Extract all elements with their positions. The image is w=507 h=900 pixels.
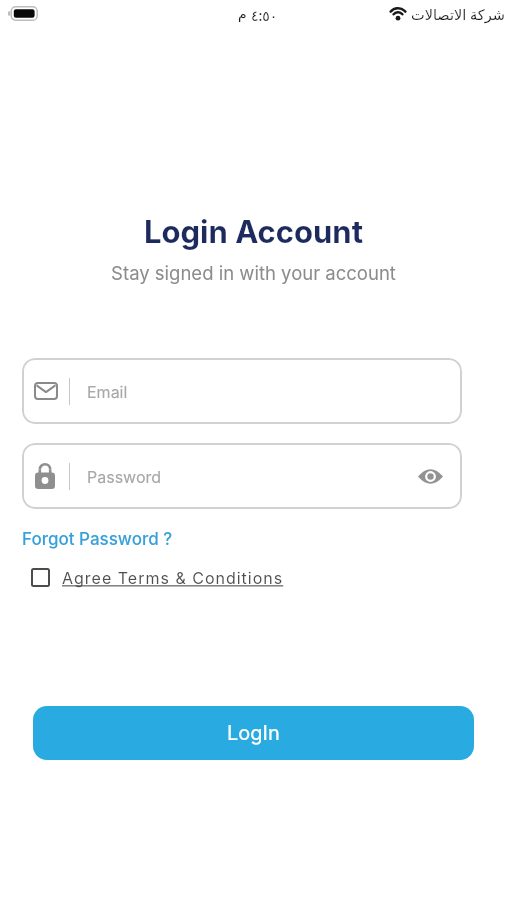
button[interactable]: Forgot Password ? [22, 529, 173, 550]
staticText: LogIn [227, 721, 280, 745]
staticText: Agree Terms & Conditions [62, 568, 284, 587]
staticText: Email [87, 382, 128, 401]
staticText: شركة الاتصالات [411, 4, 505, 24]
staticText: ٤:٥٠ [251, 6, 278, 25]
staticText: Login Account [0, 213, 507, 251]
staticText: Stay signed in with your account [0, 262, 507, 284]
button[interactable]: Agree Terms & Conditions [31, 568, 284, 587]
button[interactable] [418, 468, 443, 485]
button[interactable]: LogIn [33, 706, 474, 760]
button[interactable]: Password [22, 443, 462, 509]
staticText: م [238, 6, 247, 22]
button[interactable]: Email [22, 358, 462, 424]
staticText: Password [87, 467, 162, 486]
